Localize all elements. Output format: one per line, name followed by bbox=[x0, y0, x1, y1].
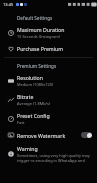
staticText: Average (1.8Mb/s) bbox=[17, 101, 51, 106]
button[interactable]: Remove Watermark toggle bbox=[80, 131, 93, 139]
staticText: Resolution bbox=[17, 74, 43, 81]
staticText: 15 Seconds (Instagram) bbox=[17, 34, 60, 39]
staticText: Premium Settings bbox=[17, 63, 57, 69]
staticText: Remove Watermark bbox=[17, 132, 66, 139]
staticText: Purchase Premium bbox=[17, 45, 64, 52]
staticText: Warning bbox=[17, 145, 38, 152]
button[interactable]: Preset Config bbox=[0, 109, 97, 128]
staticText: 13:45 bbox=[3, 2, 14, 7]
button[interactable]: Bitrate bbox=[0, 90, 97, 109]
staticText: Maximum Duration bbox=[17, 26, 65, 33]
button[interactable]: Maximum Duration bbox=[0, 23, 97, 42]
staticText: Fast bbox=[17, 120, 25, 125]
button[interactable]: Resolution bbox=[0, 71, 97, 90]
button[interactable]: Warning bbox=[0, 142, 97, 166]
button[interactable]: Remove Watermark bbox=[0, 128, 97, 142]
staticText: Default Settings bbox=[17, 15, 53, 21]
staticText: Medium (1080x720) bbox=[17, 82, 54, 87]
staticText: Sometimes, using very high quality may t… bbox=[17, 153, 93, 163]
staticText: Bitrate bbox=[17, 93, 34, 100]
button[interactable]: Purchase Premium bbox=[0, 42, 97, 55]
staticText: Preset Config bbox=[17, 112, 50, 119]
